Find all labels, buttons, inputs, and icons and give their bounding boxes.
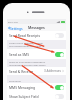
button[interactable]: Settings <box>8 24 23 31</box>
button[interactable]: On <box>55 85 64 90</box>
staticText: Show Subject Field <box>9 94 39 99</box>
staticText: 3 Addresses <box>44 69 61 73</box>
button[interactable]: Send as SMS <box>9 49 64 59</box>
staticText: unavailable. Carrier rates apply. <box>9 63 47 66</box>
staticText: 9:41 AM <box>8 20 18 23</box>
staticText: Send as SMS when iMessage is <box>9 60 46 63</box>
staticText: Settings <box>10 26 23 30</box>
button[interactable]: On <box>55 52 64 57</box>
button[interactable]: Show Subject Field <box>9 92 64 100</box>
staticText: Send & Receive <box>9 69 34 74</box>
staticText: SMS/MMS <box>9 79 21 82</box>
button[interactable]: Off <box>55 33 64 38</box>
staticText: are notified when you have <box>9 44 41 47</box>
button[interactable]: Send & Receive <box>9 67 64 75</box>
staticText: Messages <box>28 25 45 30</box>
button[interactable]: MMS Messaging <box>9 83 64 92</box>
staticText: Send Read Receipts <box>9 33 41 38</box>
staticText: Send as SMS <box>9 52 30 57</box>
staticText: MMS Messaging <box>9 85 36 90</box>
staticText: When this is enabled, people <box>9 41 43 44</box>
button[interactable]: Send Read Receipts <box>9 31 64 40</box>
button[interactable]: Off <box>55 94 64 99</box>
